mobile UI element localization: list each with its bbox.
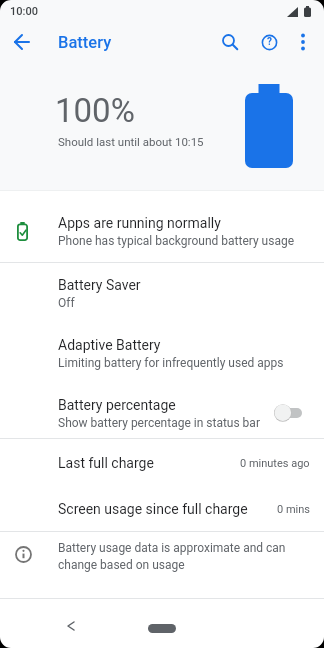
button[interactable]: Screen usage since full charge <box>0 487 324 531</box>
staticText: 0 minutes ago <box>240 457 310 470</box>
button[interactable] <box>215 27 245 57</box>
button[interactable] <box>58 613 84 639</box>
button[interactable]: Last full charge <box>0 439 324 487</box>
staticText: 100% <box>55 91 135 130</box>
staticText: Phone has typical background battery usa… <box>58 234 295 248</box>
button[interactable]: ? <box>254 27 284 57</box>
button[interactable]: Adaptive Battery <box>0 323 324 383</box>
staticText: Show battery percentage in status bar <box>58 416 260 430</box>
staticText: Adaptive Battery <box>58 337 161 353</box>
button[interactable]: Apps are running normally <box>0 191 324 262</box>
staticText: Battery usage data is approximate and ca… <box>58 541 286 572</box>
staticText: Apps are running normally <box>58 215 221 231</box>
button[interactable] <box>148 624 176 633</box>
button[interactable]: Battery Saver <box>0 263 324 323</box>
button[interactable]: Battery percentage <box>0 383 324 438</box>
staticText: Battery percentage <box>58 397 176 413</box>
staticText: Battery <box>58 33 112 52</box>
staticText: 0 mins <box>277 503 310 516</box>
button[interactable] <box>288 27 318 57</box>
staticText: Limiting battery for infrequently used a… <box>58 356 284 370</box>
staticText: Screen usage since full charge <box>58 501 248 517</box>
staticText: 10:00 <box>10 5 38 18</box>
staticText: Off <box>58 296 75 310</box>
staticText: Should last until about 10:15 <box>58 135 204 148</box>
staticText: Battery Saver <box>58 277 141 293</box>
button[interactable] <box>274 404 302 422</box>
staticText: Last full charge <box>58 455 154 471</box>
staticText: ? <box>267 36 272 48</box>
button[interactable] <box>8 28 36 56</box>
